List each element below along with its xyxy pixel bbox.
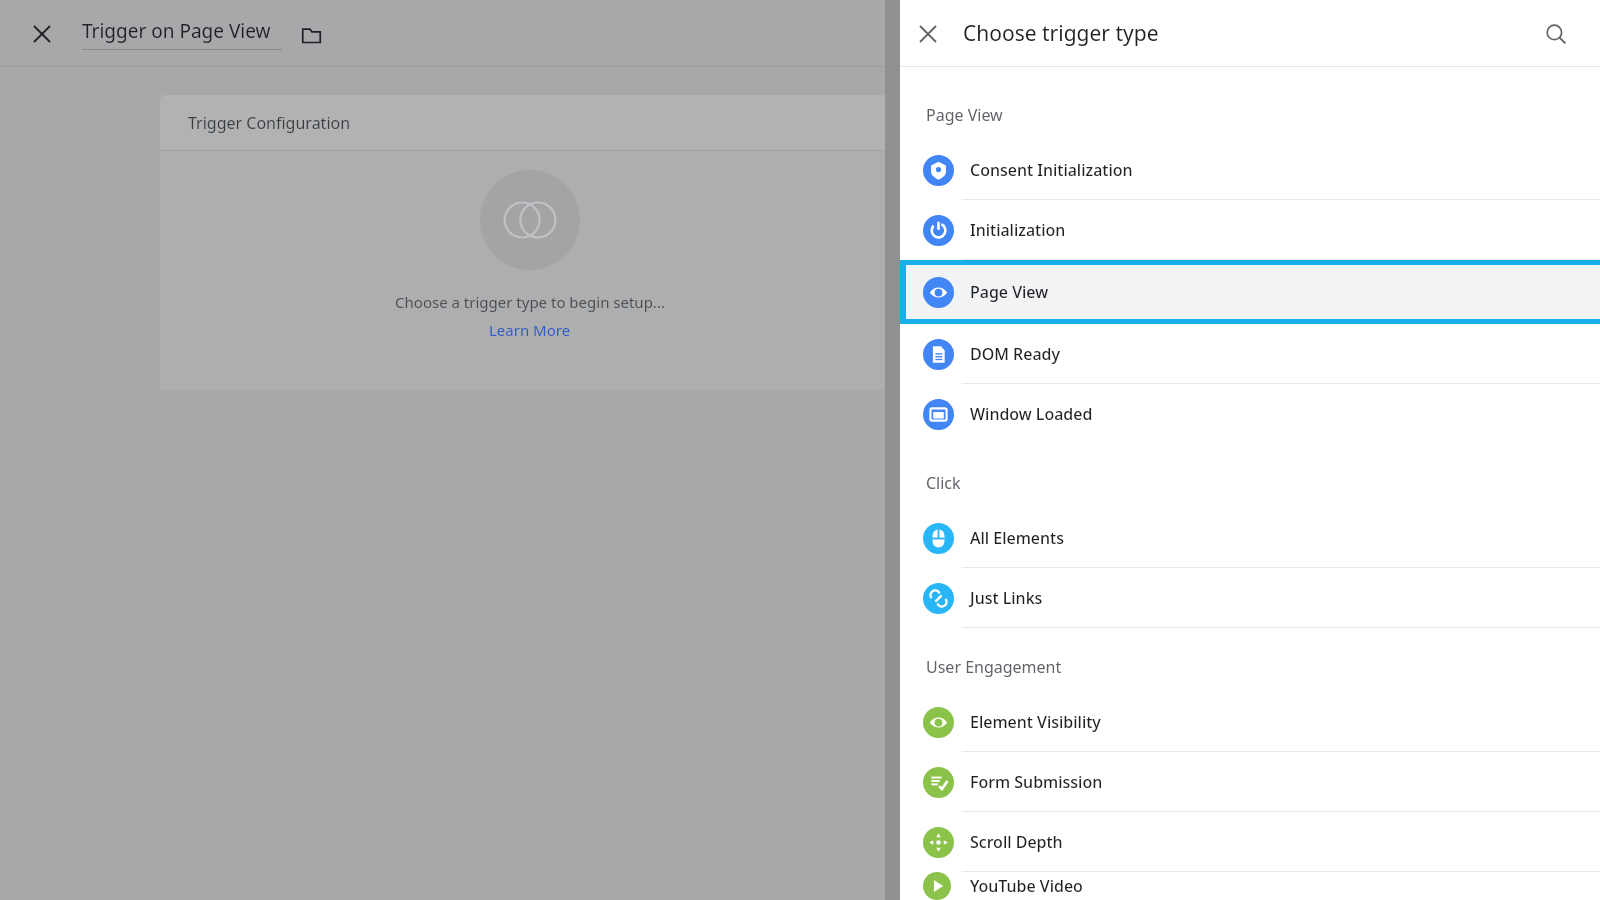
staticText: All Elements bbox=[970, 527, 1064, 549]
button[interactable]: Initialization bbox=[900, 200, 1600, 260]
button[interactable]: Close panel bbox=[908, 14, 948, 54]
staticText: Initialization bbox=[970, 219, 1066, 241]
staticText: Window Loaded bbox=[970, 403, 1093, 425]
button[interactable]: Search bbox=[1534, 12, 1578, 56]
staticText: Choose trigger type bbox=[963, 19, 1159, 48]
staticText: YouTube Video bbox=[970, 875, 1083, 897]
button[interactable]: Page View bbox=[900, 265, 1600, 319]
staticText: Just Links bbox=[970, 587, 1043, 609]
button[interactable]: DOM Ready bbox=[900, 324, 1600, 384]
button[interactable]: Scroll Depth bbox=[900, 812, 1600, 872]
button[interactable]: Consent Initialization bbox=[900, 140, 1600, 200]
button[interactable]: YouTube Video bbox=[900, 872, 1600, 900]
staticText: Page View bbox=[970, 281, 1049, 303]
staticText: Page View bbox=[926, 104, 1003, 126]
button[interactable]: All Elements bbox=[900, 508, 1600, 568]
button[interactable]: Folder bbox=[296, 19, 326, 49]
button[interactable]: Element Visibility bbox=[900, 692, 1600, 752]
staticText: Trigger on Page View bbox=[82, 18, 271, 44]
staticText: Element Visibility bbox=[970, 711, 1101, 733]
button[interactable]: Close bbox=[22, 14, 62, 54]
staticText: Form Submission bbox=[970, 771, 1103, 793]
button[interactable]: Learn More bbox=[489, 320, 571, 340]
button[interactable]: Window Loaded bbox=[900, 384, 1600, 444]
staticText: Scroll Depth bbox=[970, 831, 1063, 853]
staticText: Click bbox=[926, 472, 961, 494]
button[interactable]: Just Links bbox=[900, 568, 1600, 628]
staticText: DOM Ready bbox=[970, 343, 1060, 365]
button[interactable]: Form Submission bbox=[900, 752, 1600, 812]
staticText: Consent Initialization bbox=[970, 159, 1133, 181]
staticText: Learn More bbox=[489, 320, 571, 340]
staticText: Choose a trigger type to begin setup... bbox=[395, 292, 665, 312]
staticText: Trigger Configuration bbox=[188, 112, 351, 134]
staticText: User Engagement bbox=[926, 656, 1062, 678]
